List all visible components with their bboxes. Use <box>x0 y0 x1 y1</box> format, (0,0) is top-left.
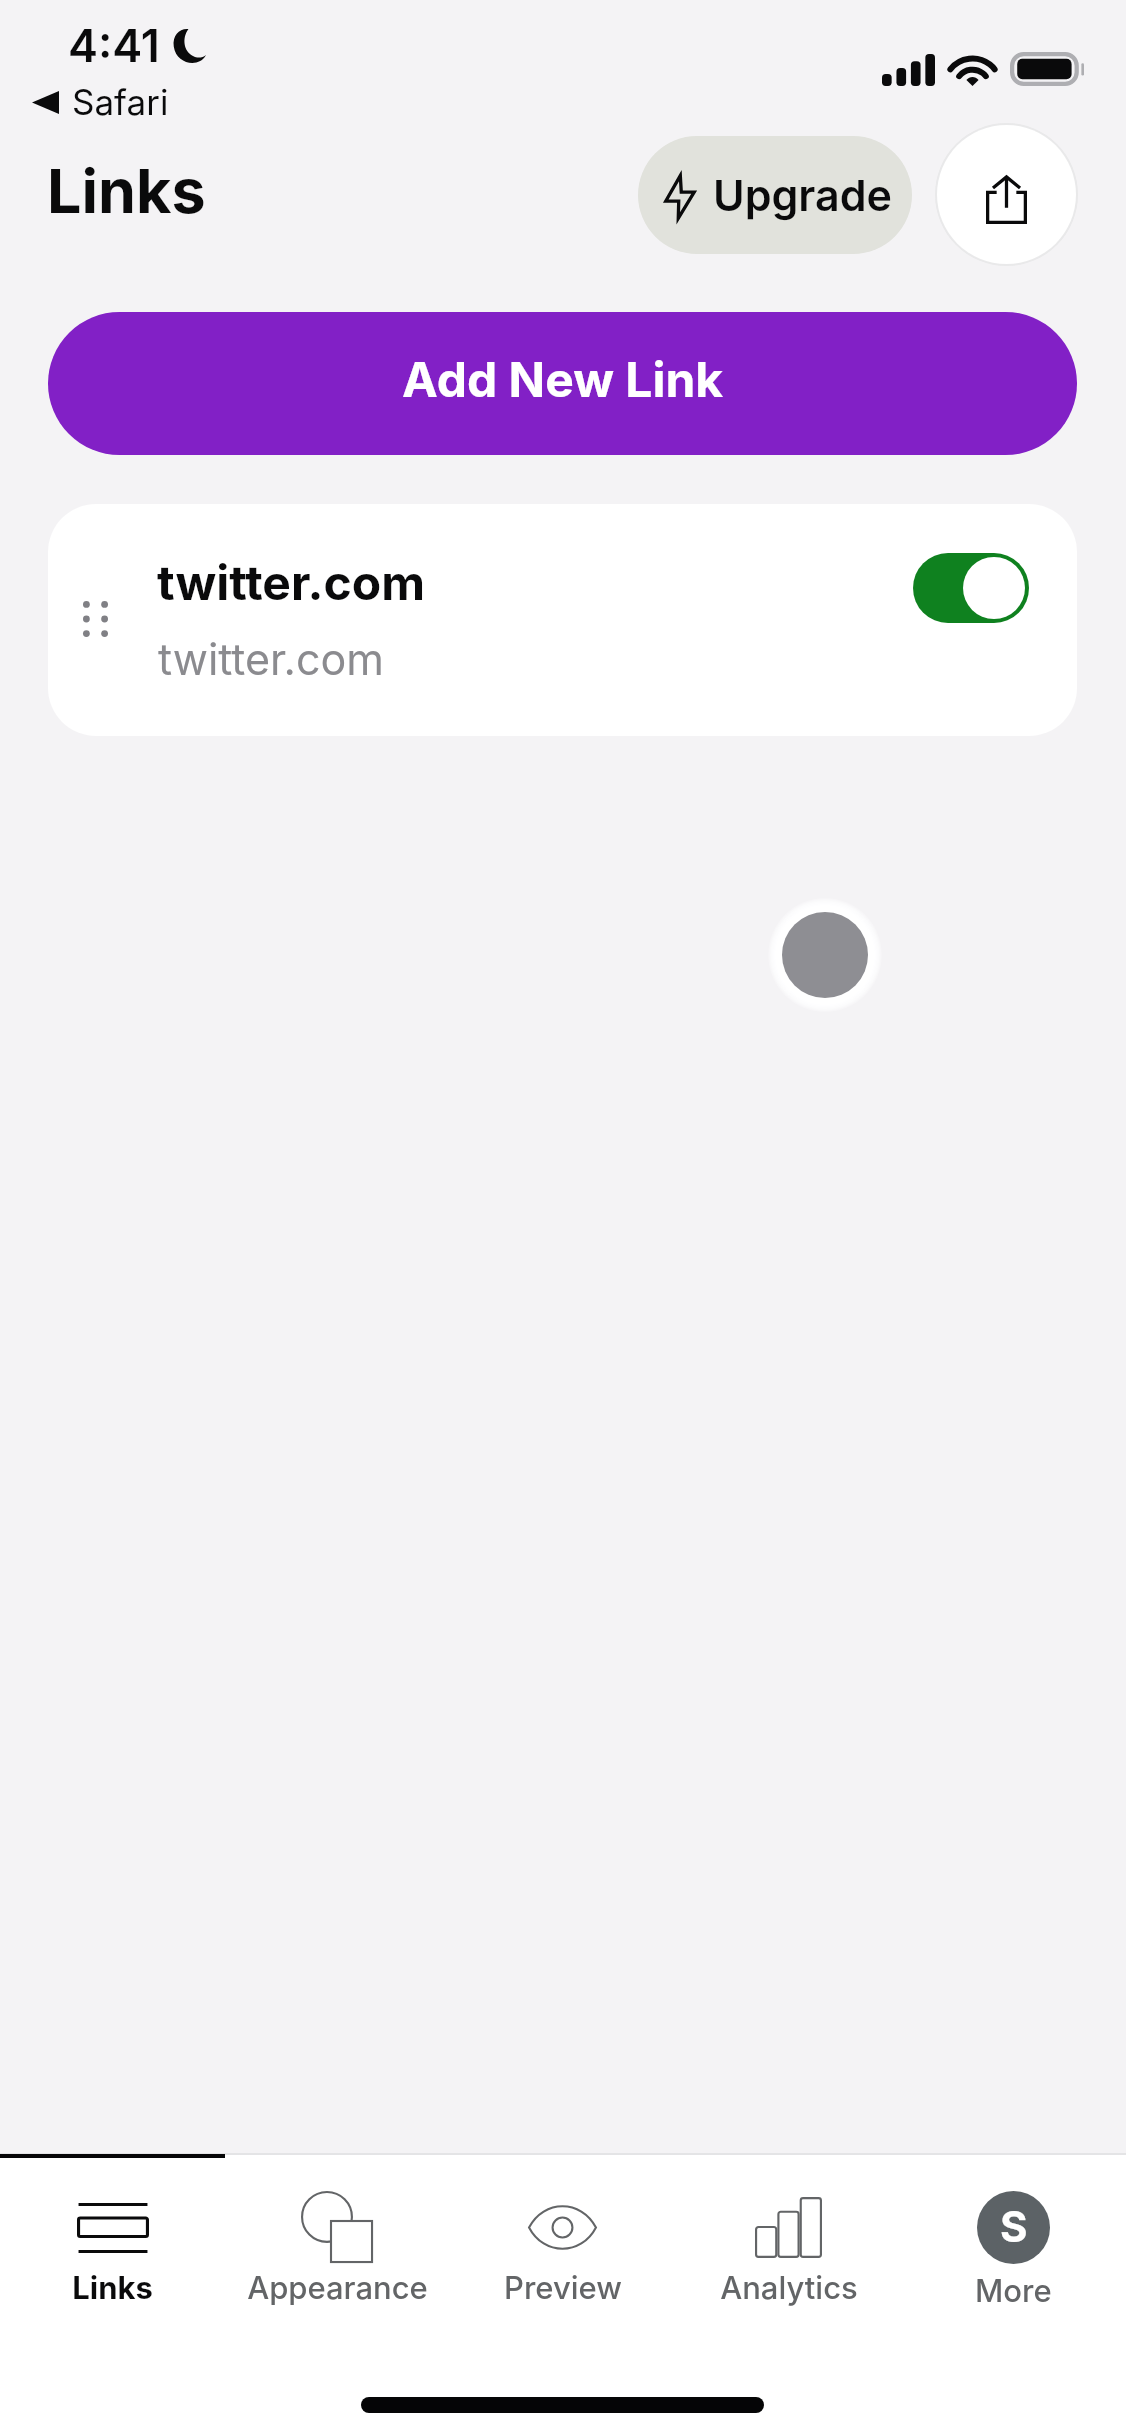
staticText: twitter.com <box>158 633 384 685</box>
staticText: Safari <box>72 81 169 123</box>
button[interactable]: Toggle link <box>913 553 1029 623</box>
button[interactable]: Appearance <box>225 2155 450 2315</box>
button[interactable]: Links <box>0 2155 225 2315</box>
button[interactable]: Upgrade <box>638 136 912 254</box>
button[interactable]: Add New Link <box>48 312 1077 455</box>
staticText: twitter.com <box>157 553 426 611</box>
button[interactable]: Safari <box>32 81 179 129</box>
button[interactable]: Analytics <box>676 2155 901 2315</box>
button[interactable]: Preview <box>450 2155 675 2315</box>
staticText: 4:41 <box>68 18 160 72</box>
staticText: More <box>975 2272 1052 2310</box>
staticText: Links <box>47 154 206 228</box>
staticText: Add New Link <box>402 350 724 408</box>
button[interactable]: S <box>901 2155 1126 2315</box>
staticText: Analytics <box>720 2269 858 2307</box>
staticText: Links <box>72 2269 153 2307</box>
button[interactable]: twitter.com <box>48 504 1077 736</box>
staticText: Preview <box>504 2269 622 2307</box>
staticText: S <box>1000 2201 1028 2252</box>
button[interactable]: Share <box>937 125 1076 264</box>
staticText: Appearance <box>247 2269 428 2307</box>
staticText: Upgrade <box>713 169 892 221</box>
